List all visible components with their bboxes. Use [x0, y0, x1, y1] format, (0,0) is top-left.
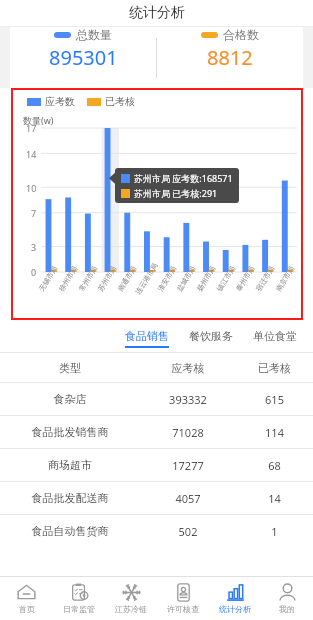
staticText: 徐州市局 — [57, 264, 79, 293]
button[interactable]: 类型 — [0, 353, 313, 382]
button[interactable]: 食品自动售货商 — [0, 515, 313, 547]
staticText: 0 — [31, 266, 37, 278]
staticText: 我的 — [279, 604, 295, 614]
staticText: 宿迁市局 — [254, 264, 276, 293]
staticText: 无锡市局 — [37, 264, 59, 293]
staticText: 南通市局 — [116, 264, 138, 293]
staticText: 淮安市局 — [156, 264, 178, 293]
staticText: 1 — [236, 524, 313, 539]
staticText: 14 — [26, 148, 37, 160]
button[interactable]: 首页 — [0, 577, 53, 620]
staticText: 68 — [236, 458, 313, 473]
staticText: 7 — [31, 207, 37, 219]
staticText: 114 — [236, 425, 313, 440]
staticText: 南京市局 — [274, 264, 296, 293]
staticText: 日常监管 — [63, 604, 95, 614]
button[interactable]: 我的 — [261, 577, 313, 620]
staticText: 首页 — [19, 604, 35, 614]
staticText: 合格数 — [223, 27, 259, 42]
staticText: 扬州市局 — [195, 264, 217, 293]
staticText: 类型 — [0, 361, 140, 375]
button[interactable]: 江苏冷链 — [105, 577, 157, 620]
button[interactable]: 食品批发配送商 — [0, 482, 313, 514]
button[interactable]: 日常监管 — [53, 577, 105, 620]
button[interactable]: 餐饮服务 — [179, 329, 243, 348]
staticText: 总数量 — [76, 27, 112, 42]
staticText: 10 — [26, 182, 37, 194]
staticText: 食品批发销售商 — [0, 425, 140, 439]
staticText: 393332 — [140, 392, 236, 407]
staticText: 常州市局 — [77, 264, 99, 293]
staticText: 4057 — [140, 491, 236, 506]
staticText: 71028 — [140, 425, 236, 440]
staticText: 17277 — [140, 458, 236, 473]
staticText: 统计分析 — [129, 4, 185, 22]
staticText: 应考数 — [45, 95, 75, 108]
staticText: 单位食堂 — [253, 329, 297, 343]
staticText: 江苏冷链 — [115, 604, 147, 614]
staticText: 餐饮服务 — [189, 329, 233, 343]
button[interactable]: 统计分析 — [209, 577, 261, 620]
staticText: 镇江市局 — [215, 264, 237, 293]
staticText: 苏州市局 应考数:168571 — [134, 172, 233, 184]
staticText: 盐城市局 — [175, 264, 197, 293]
staticText: 泰州市局 — [234, 264, 256, 293]
staticText: 许可核查 — [167, 604, 199, 614]
staticText: 应考核 — [140, 361, 236, 375]
staticText: 已考核 — [236, 361, 313, 375]
staticText: 3 — [31, 241, 37, 253]
staticText: 食杂店 — [0, 392, 140, 406]
staticText: 14 — [236, 491, 313, 506]
staticText: 8812 — [207, 44, 253, 71]
staticText: 已考核 — [105, 95, 135, 108]
button[interactable]: 食品销售 — [115, 329, 179, 348]
staticText: 食品自动售货商 — [0, 524, 140, 538]
staticText: 连云港市局 — [133, 261, 160, 296]
staticText: 苏州市局 已考核:291 — [134, 187, 218, 199]
button[interactable]: 食杂店 — [0, 383, 313, 415]
staticText: 苏州市局 — [96, 264, 118, 293]
staticText: 食品批发配送商 — [0, 491, 140, 505]
button[interactable]: 商场超市 — [0, 449, 313, 481]
staticText: 895301 — [49, 44, 118, 71]
button[interactable]: 许可核查 — [157, 577, 209, 620]
staticText: 商场超市 — [0, 458, 140, 472]
button[interactable]: 食品批发销售商 — [0, 416, 313, 448]
staticText: 17 — [26, 122, 37, 134]
staticText: 统计分析 — [219, 604, 251, 614]
staticText: 食品销售 — [125, 329, 169, 343]
staticText: 502 — [140, 524, 236, 539]
staticText: 数量(w) — [23, 114, 54, 126]
button[interactable]: 单位食堂 — [243, 329, 307, 348]
staticText: 615 — [236, 392, 313, 407]
